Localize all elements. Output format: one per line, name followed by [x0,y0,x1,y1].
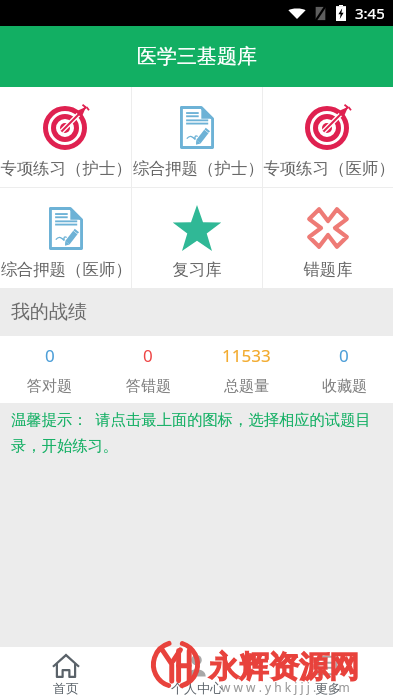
staticText: 专项练习（医师） [263,158,393,179]
staticText: 11533 [222,344,271,367]
staticText: 更多 [315,680,341,696]
staticText: 复习库 [172,259,222,280]
staticText: 温馨提示： 请点击最上面的图标，选择相应的试题目录，开始练习。 [11,409,389,455]
button[interactable]: 综合押题（医师） [0,188,131,288]
button[interactable]: 0 [295,336,393,403]
staticText: 综合押题（护士） [132,158,262,179]
staticText: 永辉资源网 [209,648,359,686]
other: Home [53,653,79,679]
button[interactable]: Profile [131,647,262,700]
staticText: 0 [45,344,55,367]
staticText: 总题量 [224,377,269,396]
staticText: 错题库 [303,259,353,280]
staticText: 综合押题（医师） [0,259,131,280]
button[interactable]: 0 [99,336,197,403]
button[interactable]: 0 [0,336,99,403]
other: More [316,654,339,677]
button[interactable]: More [262,647,393,700]
staticText: 答对题 [27,377,72,396]
staticText: 医学三基题库 [137,44,257,69]
button[interactable]: 复习库 [132,188,262,288]
staticText: 专项练习（护士） [0,158,131,179]
button[interactable]: 专项练习（医师） [263,87,393,187]
staticText: 3:45 [355,3,385,23]
button[interactable]: Home [0,647,131,700]
button[interactable]: 11533 [197,336,295,403]
staticText: 0 [339,344,349,367]
button[interactable]: 专项练习（护士） [0,87,131,187]
staticText: 我的战绩 [11,300,87,324]
button[interactable]: 综合押题（护士） [132,87,262,187]
button[interactable]: 错题库 [263,188,393,288]
other: Profile [185,654,208,677]
staticText: w w w . y h k j j j . c o m [221,679,350,695]
staticText: 个人中心 [171,680,223,696]
staticText: 0 [143,344,153,367]
staticText: 首页 [53,680,79,696]
staticText: 答错题 [126,377,171,396]
staticText: 收藏题 [322,377,367,396]
